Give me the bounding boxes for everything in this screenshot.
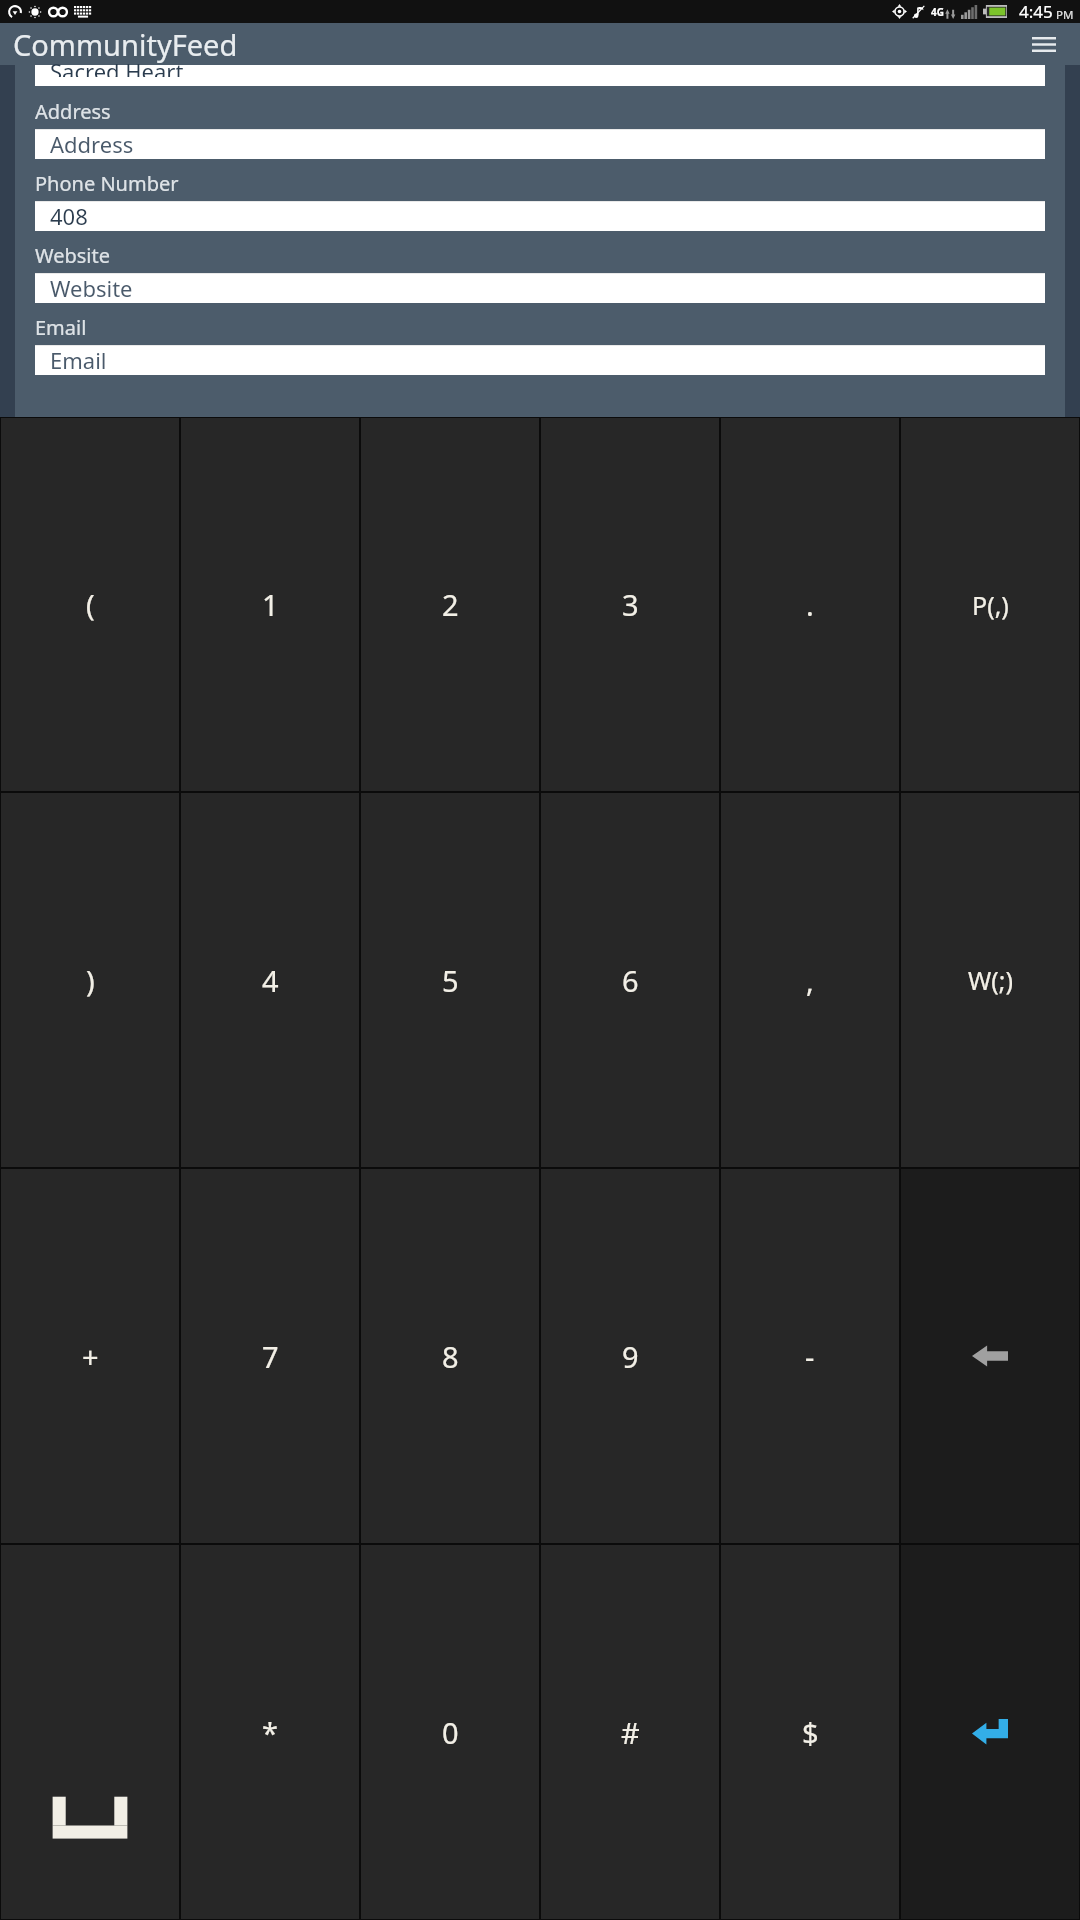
staticText: 8: [442, 1337, 459, 1376]
button[interactable]: (: [1, 418, 179, 791]
button[interactable]: 7: [181, 1169, 359, 1543]
staticText: +: [82, 1337, 99, 1376]
staticText: P(,): [972, 588, 1009, 622]
staticText: 0: [442, 1713, 459, 1752]
staticText: $: [802, 1713, 819, 1752]
button[interactable]: ): [1, 793, 179, 1167]
button[interactable]: 6: [541, 793, 719, 1167]
staticText: 7: [262, 1337, 279, 1376]
staticText: Website: [35, 242, 111, 269]
button[interactable]: 9: [541, 1169, 719, 1543]
button[interactable]: 5: [361, 793, 539, 1167]
staticText: Website: [50, 273, 133, 303]
staticText: -: [805, 1337, 815, 1376]
staticText: Email: [35, 314, 87, 341]
button[interactable]: 2: [361, 418, 539, 791]
button[interactable]: -: [721, 1169, 899, 1543]
staticText: 5: [442, 961, 459, 1000]
button[interactable]: 1: [181, 418, 359, 791]
staticText: 4G: [931, 5, 944, 19]
staticText: Sacred Heart: [50, 56, 184, 77]
button[interactable]: Enter: [901, 1545, 1079, 1919]
button[interactable]: +: [1, 1169, 179, 1543]
button[interactable]: *: [181, 1545, 359, 1919]
button[interactable]: Backspace: [901, 1169, 1079, 1543]
button[interactable]: Open navigation menu: [1028, 28, 1060, 60]
staticText: PM: [1056, 7, 1074, 23]
button[interactable]: 0: [361, 1545, 539, 1919]
staticText: 4: [262, 961, 279, 1000]
staticText: 2: [442, 585, 459, 624]
staticText: Address: [50, 129, 134, 159]
staticText: 4:45: [1019, 0, 1053, 23]
button[interactable]: W(;): [901, 793, 1079, 1167]
staticText: 3: [622, 585, 639, 624]
button[interactable]: 408: [35, 201, 1045, 231]
staticText: 1: [262, 585, 279, 624]
button[interactable]: 8: [361, 1169, 539, 1543]
staticText: 408: [50, 201, 88, 231]
staticText: Address: [35, 98, 111, 125]
staticText: *: [262, 1713, 278, 1752]
staticText: Email: [50, 345, 107, 375]
button[interactable]: 4: [181, 793, 359, 1167]
staticText: W(;): [968, 963, 1013, 997]
staticText: 9: [622, 1337, 639, 1376]
staticText: ): [86, 961, 95, 1000]
button[interactable]: Website: [35, 273, 1045, 303]
button[interactable]: P(,): [901, 418, 1079, 791]
staticText: Phone Number: [35, 170, 179, 197]
staticText: ,: [806, 961, 814, 1000]
staticText: (: [86, 585, 95, 624]
button[interactable]: $: [721, 1545, 899, 1919]
staticText: #: [621, 1713, 640, 1752]
button[interactable]: #: [541, 1545, 719, 1919]
staticText: 6: [622, 961, 639, 1000]
staticText: .: [806, 585, 814, 624]
button[interactable]: Email: [35, 345, 1045, 375]
button[interactable]: Space: [1, 1545, 179, 1919]
button[interactable]: 3: [541, 418, 719, 791]
staticText: CommunityFeed: [13, 25, 238, 64]
button[interactable]: Address: [35, 129, 1045, 159]
button[interactable]: ,: [721, 793, 899, 1167]
